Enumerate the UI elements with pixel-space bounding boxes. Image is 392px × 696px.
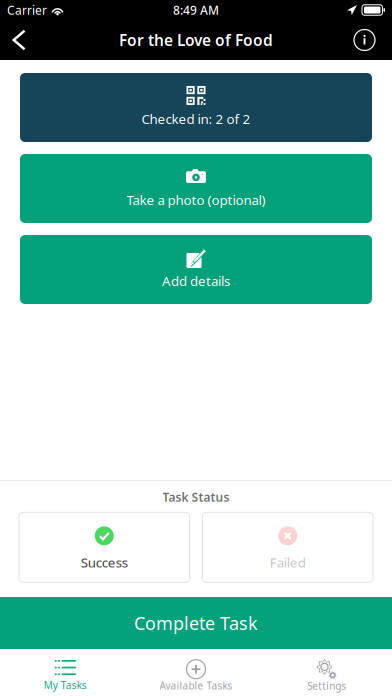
button[interactable]: Available Tasks — [131, 649, 261, 696]
staticText: Checked in: 2 of 2 — [141, 110, 250, 128]
staticText: Success — [81, 553, 128, 571]
button[interactable]: My Tasks — [0, 649, 131, 696]
staticText: Failed — [270, 553, 306, 571]
button[interactable]: Failed — [202, 512, 373, 582]
button[interactable]: Complete Task — [0, 597, 392, 649]
button[interactable]: Info — [337, 20, 392, 60]
staticText: Available Tasks — [159, 679, 232, 692]
button[interactable]: Take a photo (optional) — [20, 154, 372, 223]
staticText: Take a photo (optional) — [126, 191, 265, 209]
staticText: 8:49 AM — [173, 2, 219, 18]
staticText: My Tasks — [44, 678, 87, 692]
staticText: Add details — [162, 272, 230, 290]
button[interactable]: Success — [19, 512, 189, 582]
staticText: Task Status — [162, 489, 229, 505]
staticText: Complete Task — [134, 611, 258, 635]
staticText: Settings — [307, 679, 346, 693]
button[interactable]: Add details — [20, 235, 372, 304]
button[interactable]: Back — [0, 20, 38, 60]
button[interactable]: Checked in: 2 of 2 — [20, 73, 372, 142]
button[interactable]: Settings — [261, 649, 392, 696]
staticText: For the Love of Food — [119, 29, 273, 51]
staticText: Carrier — [7, 2, 47, 18]
